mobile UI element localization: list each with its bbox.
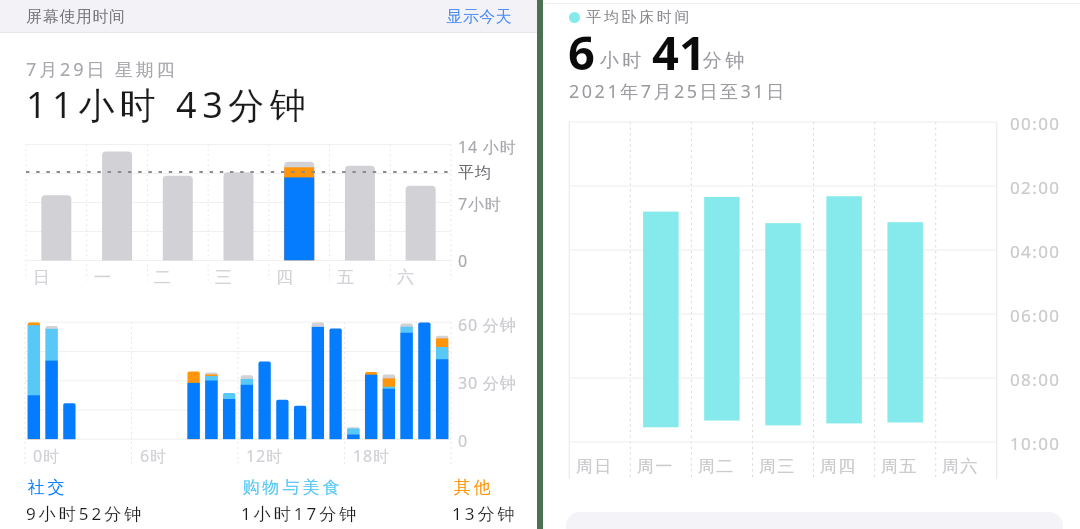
staticText: 9小时52分钟	[26, 502, 145, 525]
staticText: 02:00	[1010, 176, 1061, 199]
staticText: 41	[652, 20, 706, 84]
staticText: 0	[458, 430, 468, 452]
staticText: 7小时	[458, 193, 502, 215]
staticText: 10:00	[1010, 432, 1061, 455]
staticText: 周二	[697, 456, 734, 477]
staticText: 6时	[140, 445, 167, 467]
staticText: 屏幕使用时间	[26, 7, 126, 27]
staticText: 社交	[26, 477, 66, 498]
button[interactable]: 其他	[452, 477, 518, 525]
staticText: 分钟	[701, 49, 746, 73]
staticText: 08:00	[1010, 368, 1061, 391]
staticText: 7月29日 星期四	[26, 57, 178, 82]
staticText: 30 分钟	[458, 372, 517, 394]
staticText: 14 小时	[458, 136, 517, 158]
staticText: 04:00	[1010, 240, 1061, 263]
staticText: 周六	[941, 456, 978, 477]
staticText: 11小时 43分钟	[26, 80, 312, 129]
staticText: 五	[337, 267, 354, 288]
button[interactable]: 社交	[26, 477, 145, 525]
button[interactable]: 屏幕使用时间	[0, 0, 537, 33]
staticText: 小时	[598, 49, 643, 73]
staticText: 60 分钟	[458, 314, 517, 336]
staticText: 12时	[246, 445, 283, 467]
staticText: 六	[397, 267, 414, 288]
staticText: 日	[33, 267, 50, 288]
staticText: 平均	[458, 163, 492, 183]
staticText: 购物与美食	[241, 477, 341, 498]
staticText: 00:00	[1010, 112, 1061, 135]
staticText: 0	[458, 250, 468, 272]
button[interactable]: 平均卧床时间	[569, 8, 693, 27]
staticText: 周四	[819, 456, 856, 477]
staticText: 06:00	[1010, 304, 1061, 327]
staticText: 一	[94, 267, 111, 288]
staticText: 周一	[636, 456, 673, 477]
button[interactable]: 购物与美食	[241, 477, 360, 525]
staticText: 其他	[452, 477, 492, 498]
staticText: 三	[215, 267, 232, 288]
staticText: 平均卧床时间	[586, 8, 693, 27]
staticText: 二	[154, 267, 171, 288]
staticText: 四	[276, 267, 293, 288]
staticText: 2021年7月25日至31日	[569, 79, 787, 104]
staticText: 13分钟	[452, 502, 518, 525]
staticText: 18时	[353, 445, 390, 467]
staticText: 6	[568, 20, 595, 84]
staticText: 0时	[33, 445, 60, 467]
staticText: 显示今天	[446, 7, 512, 27]
staticText: 周日	[575, 456, 612, 477]
staticText: 周三	[758, 456, 795, 477]
staticText: 1小时17分钟	[241, 502, 360, 525]
staticText: 周五	[880, 456, 917, 477]
button[interactable]: 显示今天	[444, 0, 514, 33]
